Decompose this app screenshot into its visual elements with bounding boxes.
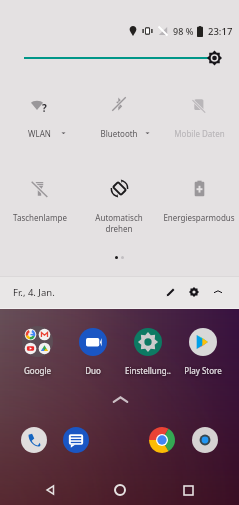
button[interactable]: Google	[10, 326, 65, 376]
staticText: ?	[42, 101, 47, 114]
button[interactable]: Mobile Daten	[159, 95, 239, 139]
button[interactable]: Chrome	[140, 424, 183, 456]
staticText: Duo	[85, 365, 101, 376]
button[interactable]: Energiesparmodus	[159, 179, 239, 223]
button[interactable]: Collapse	[206, 280, 230, 304]
button[interactable]: Home	[102, 475, 138, 505]
button[interactable]: Settings	[182, 280, 206, 304]
button[interactable]: Open app drawer	[107, 393, 133, 406]
staticText: Play Store	[184, 365, 222, 376]
staticText: Automatisch drehen	[95, 212, 143, 234]
button[interactable]: Bluetooth	[79, 95, 159, 139]
button[interactable]: Automatisch drehen	[79, 179, 159, 234]
staticText: Einstellung..	[125, 365, 171, 376]
button[interactable]: Play Store	[175, 326, 230, 376]
button[interactable]: Einstellung..	[120, 326, 175, 376]
staticText: WLAN	[28, 128, 51, 139]
button[interactable]: Camera	[183, 424, 226, 456]
button[interactable]: Taschenlampe	[0, 179, 79, 223]
button[interactable]: Recents	[170, 475, 206, 505]
staticText: 98 %	[173, 25, 194, 37]
button[interactable]: Edit	[158, 280, 182, 304]
staticText: 23:17	[208, 25, 233, 38]
staticText: Fr., 4. Jan.	[13, 286, 55, 299]
button[interactable]: Duo	[65, 326, 120, 376]
staticText: Energiesparmodus	[163, 212, 235, 223]
button[interactable]: Back	[33, 475, 69, 505]
button[interactable]: WLAN	[0, 95, 79, 139]
staticText: Taschenlampe	[13, 212, 67, 223]
button[interactable]: Messages	[55, 424, 97, 456]
button[interactable]: Phone	[13, 424, 55, 456]
staticText: Mobile Daten	[174, 128, 225, 139]
staticText: Bluetooth	[100, 128, 138, 139]
button[interactable]: Brightness	[0, 47, 239, 69]
staticText: Google	[24, 365, 51, 376]
